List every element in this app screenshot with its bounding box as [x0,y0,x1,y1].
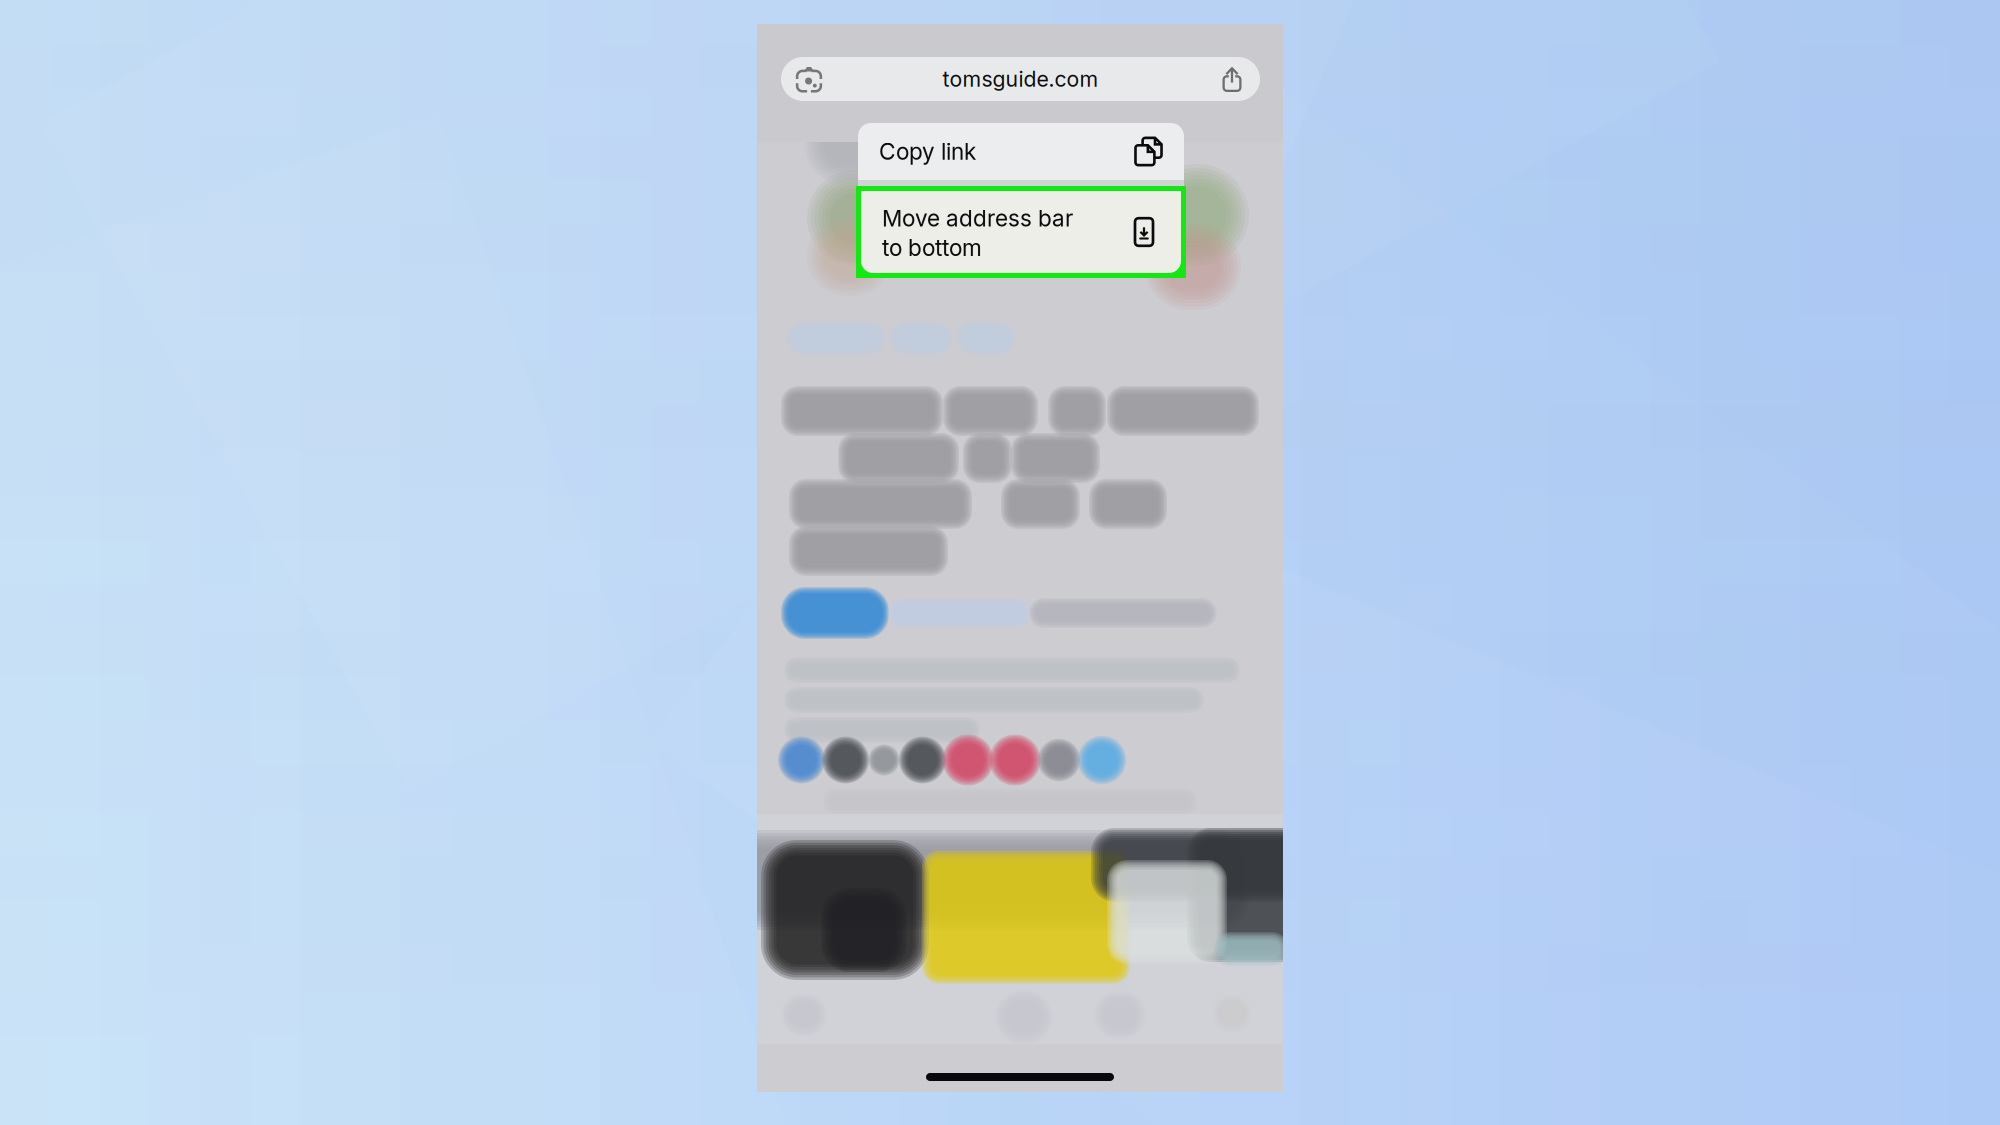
button[interactable]: Share [1204,57,1260,101]
staticText: to bottom [882,234,982,261]
button[interactable]: Move address bar [856,186,1186,278]
staticText: Copy link [879,138,976,165]
staticText: Move address bar [882,205,1073,232]
button[interactable]: Visual look up [781,57,837,101]
button[interactable]: Copy link [858,123,1184,180]
staticText: tomsguide.com [942,66,1098,92]
